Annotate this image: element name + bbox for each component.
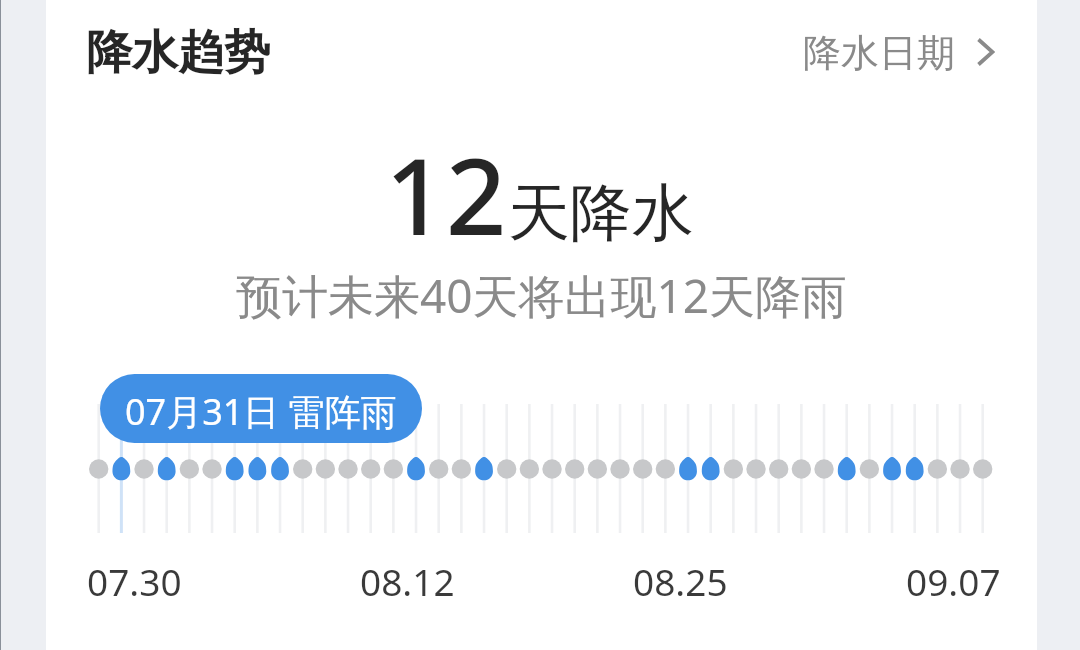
button[interactable]: 07月31日 雷阵雨: [100, 374, 422, 443]
staticText: 09.07: [906, 556, 1001, 606]
button[interactable]: 40 day precipitation chart: [46, 390, 1037, 540]
staticText: 07月31日 雷阵雨: [125, 387, 397, 436]
staticText: 08.12: [360, 556, 455, 606]
staticText: 07.30: [87, 556, 182, 606]
staticText: 12: [385, 122, 507, 266]
staticText: 08.25: [633, 556, 728, 606]
button[interactable]: 降水日期: [801, 23, 995, 83]
staticText: 降水趋势: [86, 24, 270, 82]
staticText: 预计未来40天将出现12天降雨: [46, 264, 1037, 327]
staticText: 天降水: [508, 174, 694, 252]
staticText: 降水日期: [803, 29, 955, 77]
other: Open precipitation date list: [977, 38, 994, 66]
